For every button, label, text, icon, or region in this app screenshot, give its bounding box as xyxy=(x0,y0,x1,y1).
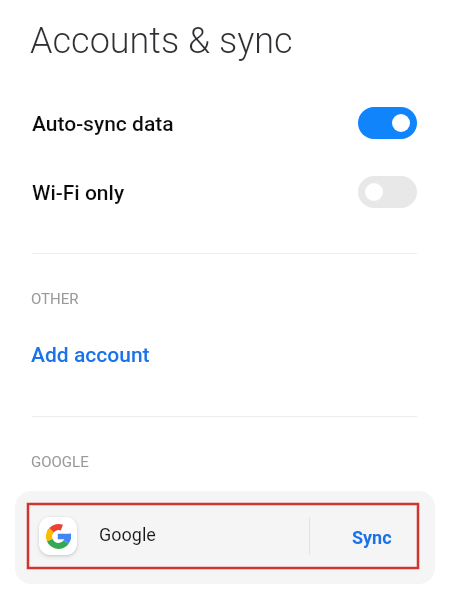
button[interactable]: Switch on xyxy=(358,107,417,139)
staticText: Sync xyxy=(352,527,392,548)
button[interactable]: Add account xyxy=(0,332,450,378)
staticText: Google xyxy=(99,524,156,545)
button[interactable]: Auto-sync data xyxy=(0,91,450,155)
button[interactable]: Switch off xyxy=(358,176,417,208)
staticText: Accounts & sync xyxy=(30,20,293,62)
staticText: Add account xyxy=(31,343,150,368)
button[interactable]: Google xyxy=(28,502,309,572)
button[interactable]: Sync xyxy=(316,502,428,572)
button[interactable]: Wi-Fi only xyxy=(0,160,450,224)
staticText: GOOGLE xyxy=(31,453,89,471)
staticText: OTHER xyxy=(31,290,79,308)
staticText: Wi-Fi only xyxy=(32,181,125,206)
staticText: Auto-sync data xyxy=(32,112,174,137)
